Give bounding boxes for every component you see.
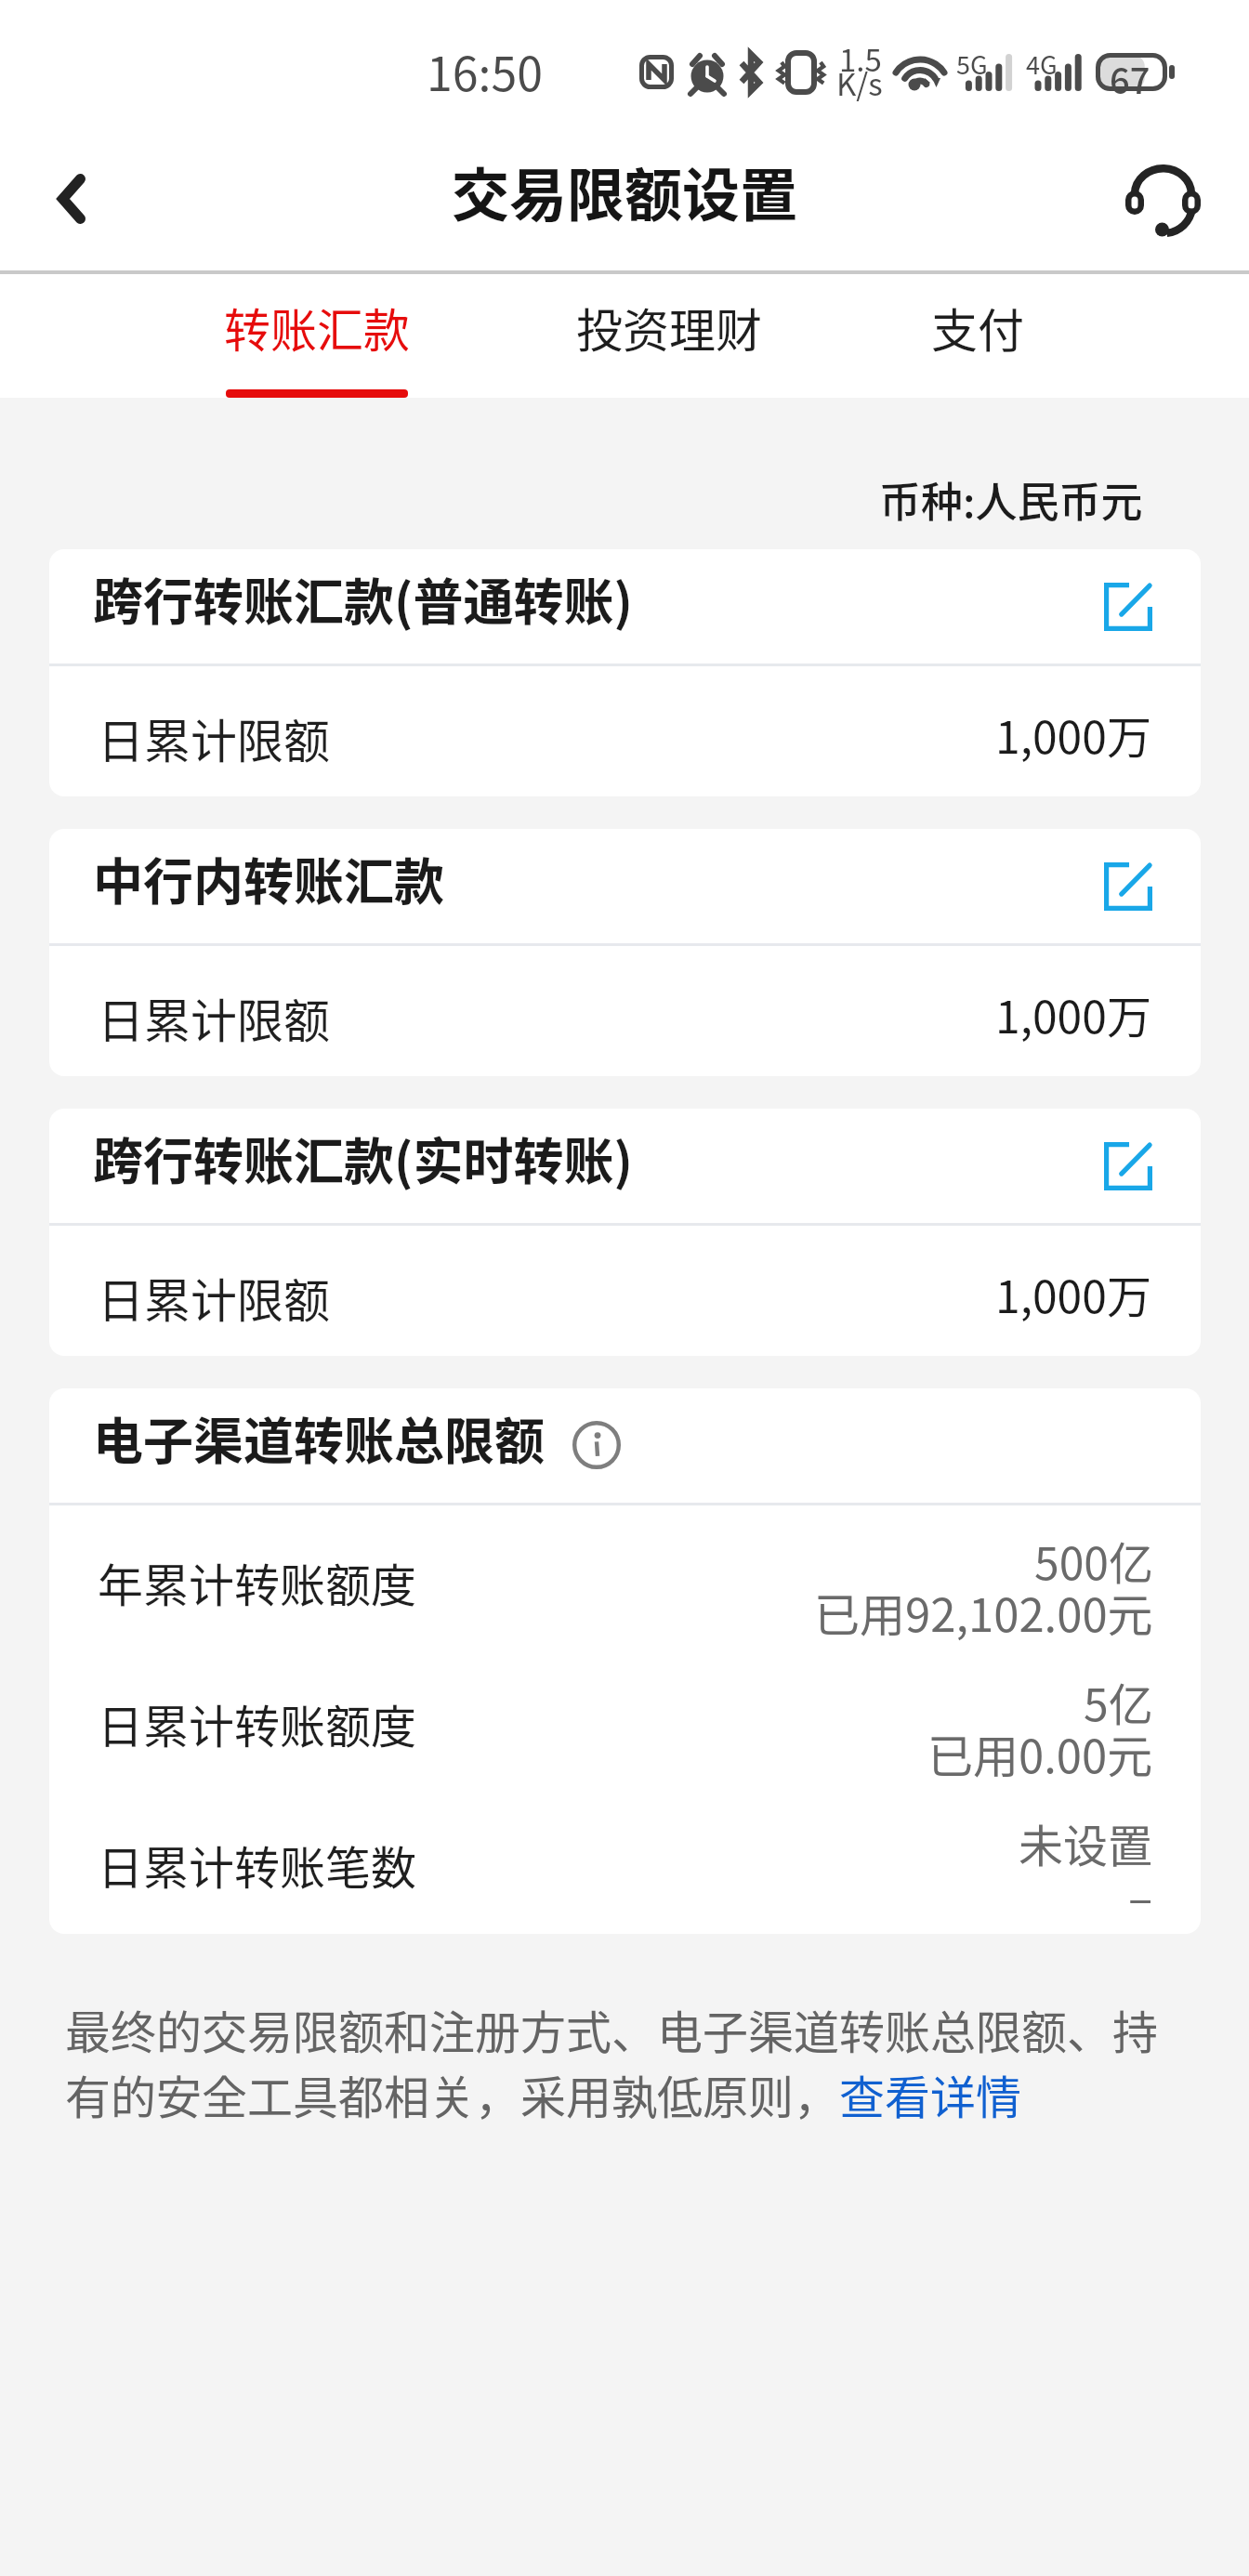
staticText: 67: [1110, 53, 1150, 104]
staticText: 16:50: [427, 37, 543, 104]
button[interactable]: 电子渠道转账总限额: [49, 1388, 1201, 1503]
staticText: 已用92,102.00元: [814, 1579, 1153, 1645]
button[interactable]: Info: [570, 1418, 624, 1472]
staticText: 转账汇款: [224, 294, 410, 361]
staticText: 日累计转账额度: [98, 1690, 417, 1756]
staticText: 1.5: [839, 36, 882, 81]
button[interactable]: 跨行转账汇款(实时转账): [49, 1109, 1201, 1223]
button[interactable]: Edit: [1098, 1137, 1158, 1196]
button[interactable]: 中行内转账汇款: [49, 829, 1201, 943]
button[interactable]: Edit: [1098, 577, 1158, 637]
staticText: 投资理财: [576, 294, 762, 361]
staticText: 跨行转账汇款(普通转账): [93, 562, 633, 635]
button[interactable]: 转账汇款: [187, 269, 447, 398]
staticText: 年累计转账额度: [98, 1549, 417, 1615]
staticText: 电子渠道转账总限额: [93, 1401, 545, 1474]
staticText: 跨行转账汇款(实时转账): [93, 1122, 633, 1194]
staticText: 未设置: [1019, 1810, 1153, 1875]
staticText: 1,000万: [995, 1261, 1151, 1326]
button[interactable]: 支付: [892, 269, 1063, 398]
staticText: 日累计限额: [98, 704, 330, 771]
button[interactable]: 投资理财: [539, 269, 799, 398]
staticText: 1,000万: [995, 702, 1151, 767]
staticText: 5亿: [1084, 1669, 1153, 1734]
staticText: –: [1128, 1861, 1153, 1927]
button[interactable]: Customer service: [1097, 121, 1249, 269]
button[interactable]: 跨行转账汇款(普通转账): [49, 549, 1201, 664]
staticText: 交易限额设置: [452, 150, 798, 233]
staticText: 1,000万: [995, 981, 1151, 1046]
staticText: 支付: [931, 294, 1024, 361]
staticText: 日累计转账笔数: [98, 1832, 417, 1898]
staticText: 500亿: [1034, 1528, 1153, 1593]
button[interactable]: Back: [0, 121, 141, 269]
staticText: 币种:人民币元: [879, 469, 1143, 530]
staticText: 中行内转账汇款: [93, 842, 444, 914]
staticText: K/s: [836, 60, 883, 105]
staticText: 日累计限额: [98, 984, 330, 1051]
staticText: 已用0.00元: [927, 1720, 1153, 1786]
staticText: 4G: [1026, 46, 1058, 82]
button[interactable]: Edit: [1098, 857, 1158, 916]
staticText: 日累计限额: [98, 1264, 330, 1331]
staticText: 5G: [956, 46, 988, 82]
staticText: 最终的交易限额和注册方式、电子渠道转账总限额、持有的安全工具都相关，采用孰低原则…: [65, 1996, 1165, 2127]
